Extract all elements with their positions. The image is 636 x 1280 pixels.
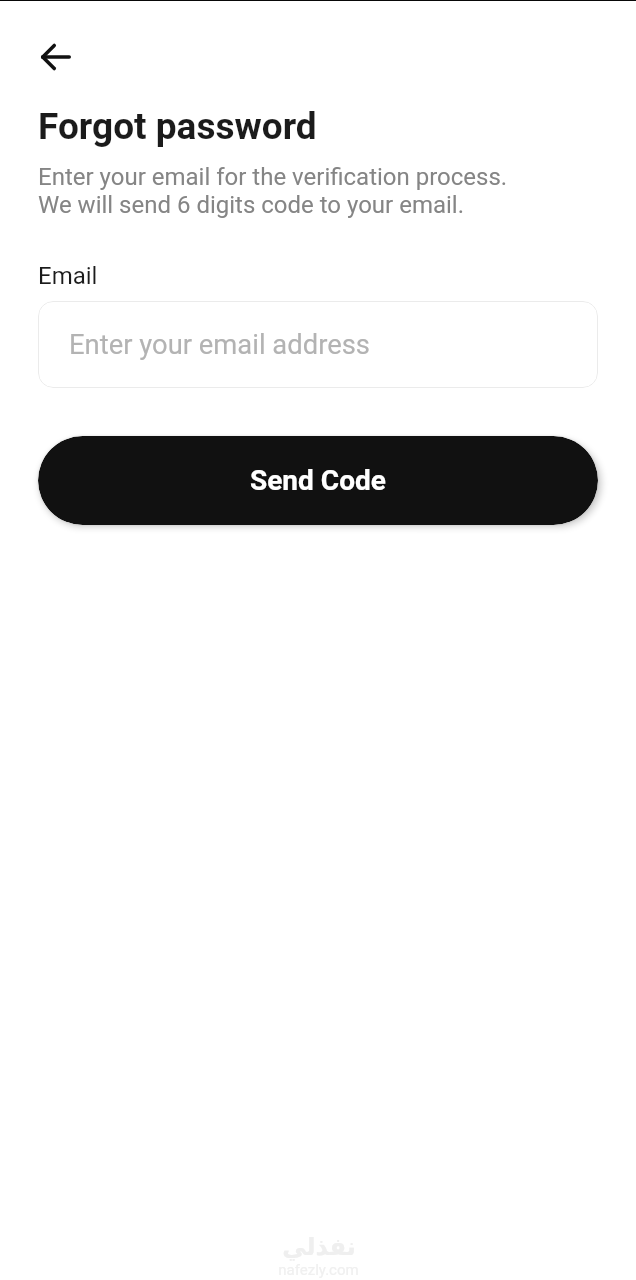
staticText: نفذلي [282,1233,356,1261]
staticText: Email [38,262,98,290]
staticText: Send Code [250,464,386,497]
staticText: Enter your email address [69,329,370,361]
staticText: Enter your email for the verification pr… [38,163,508,219]
button[interactable]: Send Code [38,436,598,525]
staticText: nafezly.com [278,1261,359,1279]
button[interactable]: Back [28,29,84,85]
button[interactable]: Enter your email address [38,301,598,388]
staticText: Forgot password [38,105,317,148]
